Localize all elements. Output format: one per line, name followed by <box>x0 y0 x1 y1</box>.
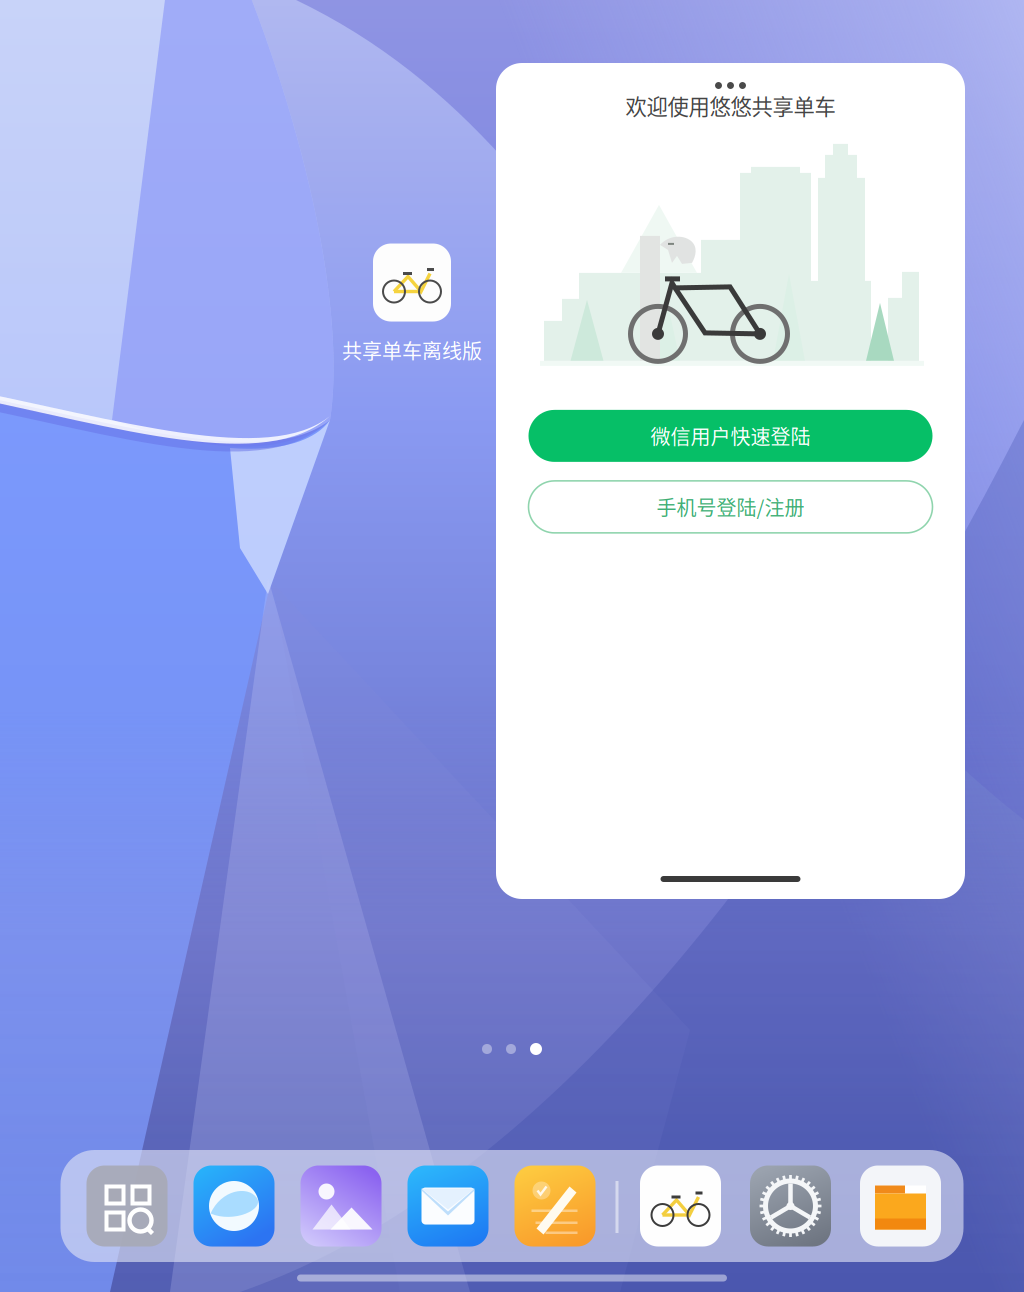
staticText: 微信用户快速登陆 <box>650 421 810 450</box>
staticText: 欢迎使用悠悠共享单车 <box>625 90 835 121</box>
button[interactable]: Settings <box>735 1150 845 1262</box>
button[interactable]: Notes <box>501 1150 608 1262</box>
button[interactable]: Browser <box>180 1150 287 1262</box>
button[interactable]: Files <box>845 1150 955 1262</box>
button[interactable]: App Library <box>73 1150 180 1262</box>
button[interactable]: Mail <box>394 1150 501 1262</box>
button[interactable]: 共享单车离线版 <box>342 243 482 364</box>
staticText: 共享单车离线版 <box>342 335 482 364</box>
button[interactable]: 手机号登陆/注册 <box>528 481 932 533</box>
button[interactable]: 微信用户快速登陆 <box>528 410 932 462</box>
staticText: 手机号登陆/注册 <box>656 492 804 521</box>
button[interactable]: 共享单车离线版 <box>625 1150 735 1262</box>
button[interactable]: Photos <box>287 1150 394 1262</box>
